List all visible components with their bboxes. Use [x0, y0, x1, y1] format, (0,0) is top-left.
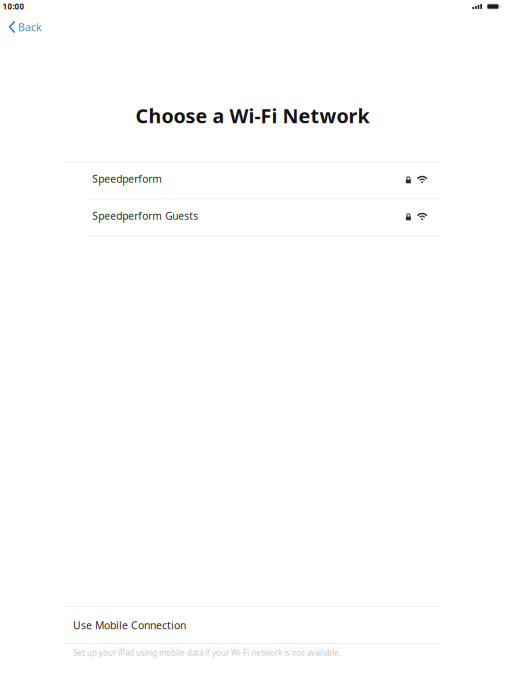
staticText: Speedperform Guests	[92, 209, 198, 223]
staticText: Set up your iPad using mobile data if yo…	[73, 647, 341, 658]
button[interactable]: Speedperform Guests	[64, 199, 441, 235]
staticText: Use Mobile Connection	[73, 618, 186, 632]
staticText: 10:00	[2, 1, 24, 12]
button[interactable]: Back	[0, 16, 52, 38]
staticText: Back	[18, 20, 42, 34]
staticText: Speedperform	[92, 172, 162, 186]
button[interactable]: Use Mobile Connection	[64, 607, 441, 643]
button[interactable]: Speedperform	[64, 162, 441, 198]
staticText: Choose a Wi-Fi Network	[135, 102, 369, 129]
